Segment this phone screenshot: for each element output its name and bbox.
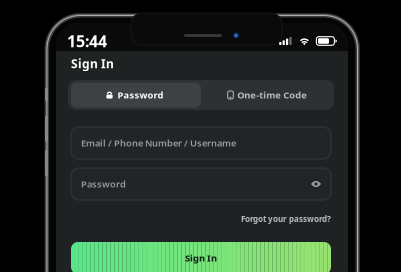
staticText: Password xyxy=(117,89,163,101)
button[interactable]: Silent switch xyxy=(45,88,48,101)
button[interactable]: Password xyxy=(68,80,201,110)
button[interactable]: Volume down xyxy=(45,150,48,176)
button[interactable]: Sign In xyxy=(71,242,331,272)
button[interactable]: Volume up xyxy=(45,116,48,142)
staticText: 15:44 xyxy=(67,30,107,52)
staticText: Password xyxy=(81,178,126,190)
staticText: Forgot your password? xyxy=(241,214,331,224)
staticText: Sign In xyxy=(71,55,114,71)
button[interactable]: Password xyxy=(71,168,331,200)
button[interactable]: One-time Code xyxy=(201,80,334,110)
staticText: One-time Code xyxy=(237,89,307,101)
button[interactable]: Email / Phone Number / Username xyxy=(71,127,331,159)
staticText: Sign In xyxy=(185,252,217,264)
button[interactable]: Forgot your password? xyxy=(241,213,331,225)
staticText: Email / Phone Number / Username xyxy=(81,137,236,149)
